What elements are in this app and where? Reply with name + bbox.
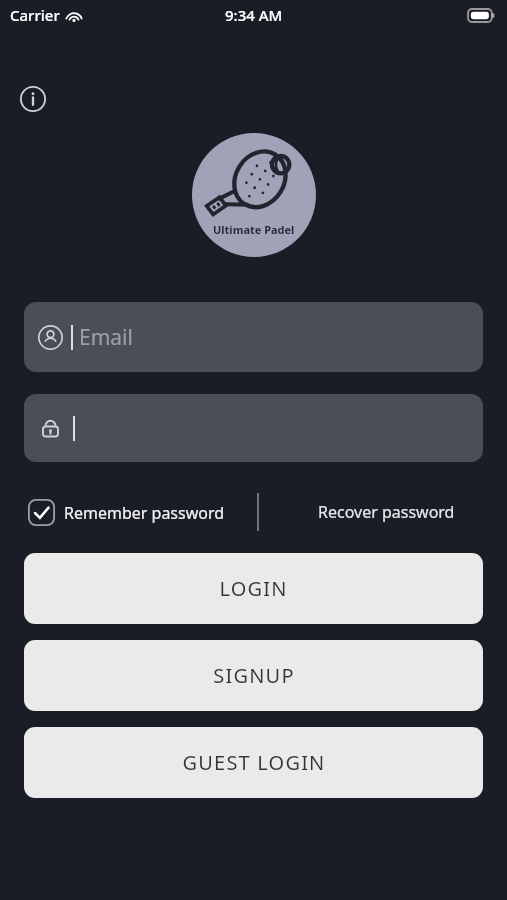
button[interactable]: Recover password	[312, 495, 461, 529]
button[interactable]: Email	[24, 302, 483, 372]
staticText: LOGIN	[219, 575, 288, 602]
staticText: SIGNUP	[213, 662, 295, 689]
staticText: GUEST LOGIN	[182, 749, 326, 776]
button[interactable]: Remember password	[24, 495, 229, 530]
button[interactable]: Information	[16, 82, 50, 116]
staticText: 9:34 AM	[225, 5, 283, 25]
staticText: Remember password	[64, 502, 225, 524]
button[interactable]: GUEST LOGIN	[24, 727, 483, 798]
staticText: Ultimate Padel	[213, 222, 295, 237]
staticText: Email	[79, 323, 133, 352]
button[interactable]: LOGIN	[24, 553, 483, 624]
button[interactable]	[24, 394, 483, 462]
staticText: Recover password	[318, 501, 455, 523]
button[interactable]: SIGNUP	[24, 640, 483, 711]
staticText: Carrier	[10, 5, 60, 25]
